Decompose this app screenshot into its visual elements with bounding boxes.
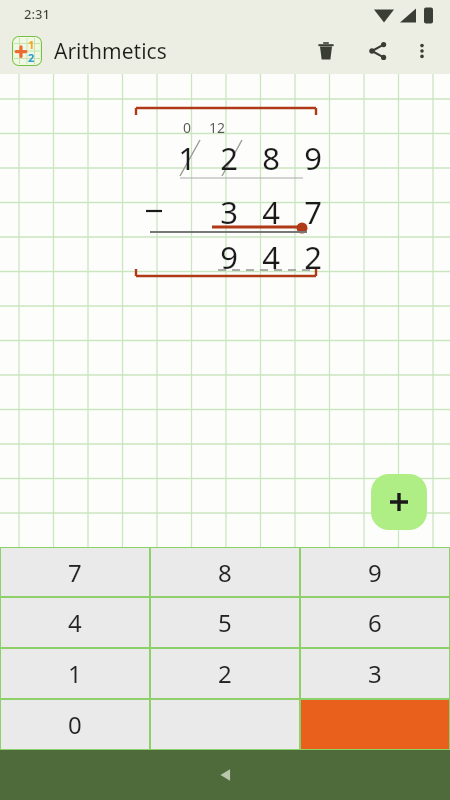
staticText: 4	[68, 606, 82, 639]
button[interactable]: App icon	[12, 36, 42, 66]
button[interactable]: More options	[406, 35, 438, 67]
staticText: 9	[304, 137, 322, 179]
staticText: 4	[262, 236, 280, 278]
staticText: 2	[220, 137, 238, 179]
button[interactable]: Share	[360, 33, 396, 69]
staticText: 9	[368, 556, 382, 589]
button[interactable]: 7	[1, 548, 149, 596]
button[interactable]: Delete	[308, 33, 344, 69]
staticText: 5	[218, 606, 232, 639]
staticText: 2	[218, 657, 232, 690]
staticText: 9	[220, 236, 238, 278]
staticText: 1	[178, 137, 196, 179]
staticText: 2:31	[24, 5, 50, 23]
button[interactable]: 4	[1, 598, 149, 647]
staticText: 8	[218, 556, 232, 589]
staticText: 4	[262, 191, 280, 233]
button[interactable]: 3	[301, 649, 449, 698]
staticText: 8	[262, 137, 280, 179]
staticText: 2	[304, 236, 322, 278]
button[interactable]: 0	[1, 700, 149, 749]
staticText: Arithmetics	[54, 37, 167, 66]
staticText: 6	[368, 606, 382, 639]
staticText: 0	[183, 118, 192, 137]
button[interactable]: 8	[151, 548, 299, 596]
staticText: 3	[368, 657, 382, 690]
staticText: 3	[220, 191, 238, 233]
button[interactable]: Add	[371, 474, 427, 530]
button[interactable]: 6	[301, 598, 449, 647]
button[interactable]: 5	[151, 598, 299, 647]
button[interactable]: Back	[205, 755, 245, 795]
staticText: 7	[68, 556, 82, 589]
staticText: 0	[68, 708, 82, 741]
button[interactable]: 9	[301, 548, 449, 596]
staticText: 7	[304, 191, 322, 233]
staticText: 12	[209, 118, 226, 137]
button[interactable]: 2	[151, 649, 299, 698]
staticText: 2	[28, 50, 35, 65]
staticText: 1	[68, 657, 82, 690]
staticText: 1	[28, 37, 35, 52]
button[interactable]: 1	[1, 649, 149, 698]
